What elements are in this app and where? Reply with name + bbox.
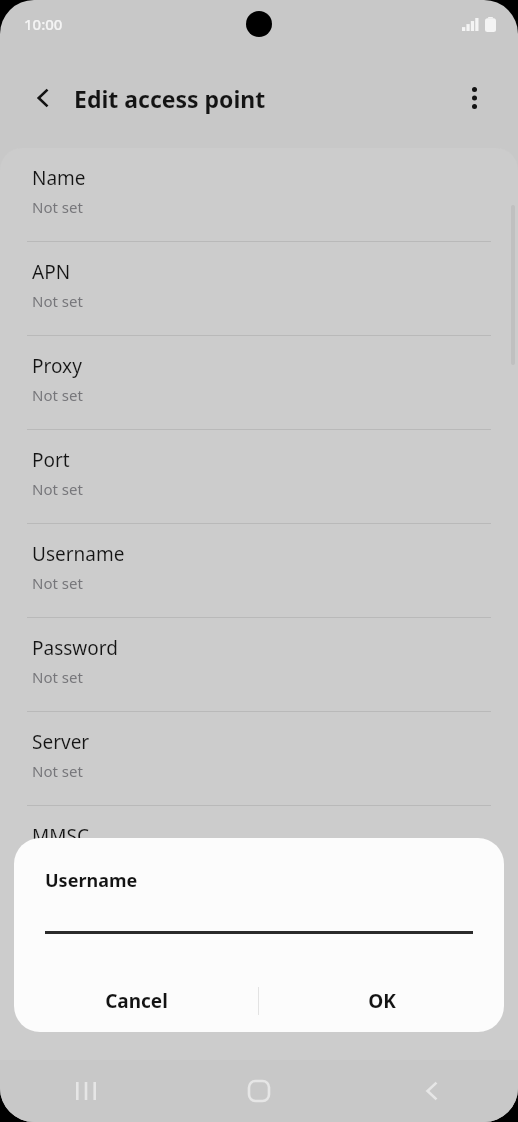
button[interactable]: Back — [345, 1060, 518, 1122]
staticText: 10:00 — [24, 14, 63, 34]
staticText: Name — [32, 165, 86, 191]
button[interactable]: Recent apps — [0, 1060, 172, 1122]
staticText: Not set — [32, 761, 83, 781]
staticText: Not set — [32, 573, 83, 593]
button[interactable]: Server — [0, 712, 518, 805]
staticText: Server — [32, 729, 90, 755]
staticText: Edit access point — [74, 83, 266, 114]
staticText: Proxy — [32, 353, 82, 379]
button[interactable]: Home — [172, 1060, 345, 1122]
button[interactable]: MMS proxy — [0, 900, 518, 993]
button[interactable]: Name — [0, 148, 518, 241]
button[interactable]: Username — [0, 524, 518, 617]
button[interactable]: OK — [259, 970, 504, 1032]
button[interactable]: Port — [0, 430, 518, 523]
button[interactable]: MMSC — [0, 806, 518, 899]
staticText: Port — [32, 447, 70, 473]
button[interactable]: Cancel — [14, 970, 258, 1032]
staticText: OK — [368, 988, 396, 1014]
staticText: Not set — [32, 291, 83, 311]
staticText: APN — [32, 259, 71, 285]
staticText: Not set — [32, 855, 83, 875]
staticText: Not set — [32, 479, 83, 499]
button[interactable]: Proxy — [0, 336, 518, 429]
staticText: Password — [32, 635, 118, 661]
staticText: Username — [45, 868, 138, 893]
staticText: Not set — [32, 385, 83, 405]
staticText: Not set — [32, 667, 83, 687]
button[interactable]: APN — [0, 242, 518, 335]
staticText: Cancel — [105, 988, 168, 1014]
button[interactable]: Back — [20, 74, 68, 122]
staticText: Not set — [32, 197, 83, 217]
button[interactable]: More options — [450, 74, 498, 122]
staticText: Username — [32, 541, 125, 567]
button[interactable]: Password — [0, 618, 518, 711]
staticText: MMSC — [32, 823, 89, 849]
staticText: MMS proxy — [32, 917, 132, 943]
